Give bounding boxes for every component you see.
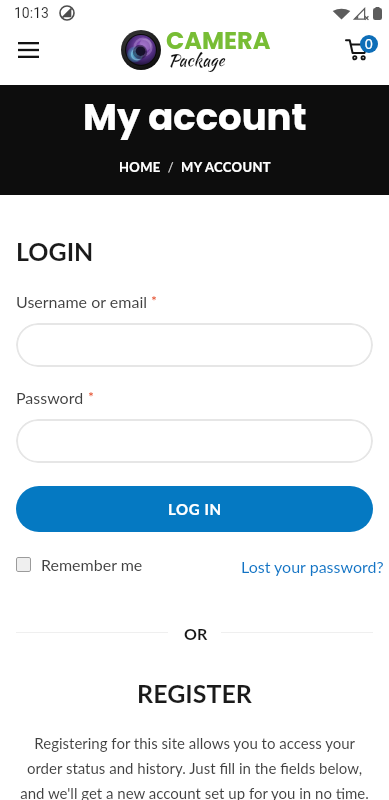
button[interactable]: Open menu [6, 28, 50, 72]
staticText: Username or email [16, 292, 147, 311]
staticText: Package [168, 48, 225, 73]
staticText: * [88, 388, 94, 405]
staticText: MY ACCOUNT [181, 159, 271, 175]
staticText: Password [16, 388, 84, 407]
staticText: * [151, 292, 157, 309]
button[interactable]: Lost your password? [241, 557, 384, 576]
staticText: LOGIN [16, 236, 94, 266]
staticText: My account [83, 91, 307, 143]
staticText: Remember me [41, 555, 143, 574]
button[interactable] [16, 323, 373, 367]
button[interactable]: Shopping cart [337, 29, 383, 75]
button[interactable]: HOME [119, 159, 161, 175]
staticText: REGISTER [0, 678, 389, 708]
staticText: Registering for this site allows you to … [16, 734, 373, 800]
staticText: OR [184, 624, 208, 643]
staticText: 10:13 [14, 5, 49, 21]
staticText: 0 [365, 36, 373, 52]
staticText: CAMERA [166, 24, 271, 58]
button[interactable]: Remember me [16, 555, 143, 574]
staticText: / [161, 159, 181, 175]
button[interactable]: LOG IN [16, 486, 373, 532]
button[interactable] [16, 419, 373, 463]
button[interactable]: CAMERA [121, 30, 226, 70]
staticText: LOG IN [168, 500, 222, 518]
